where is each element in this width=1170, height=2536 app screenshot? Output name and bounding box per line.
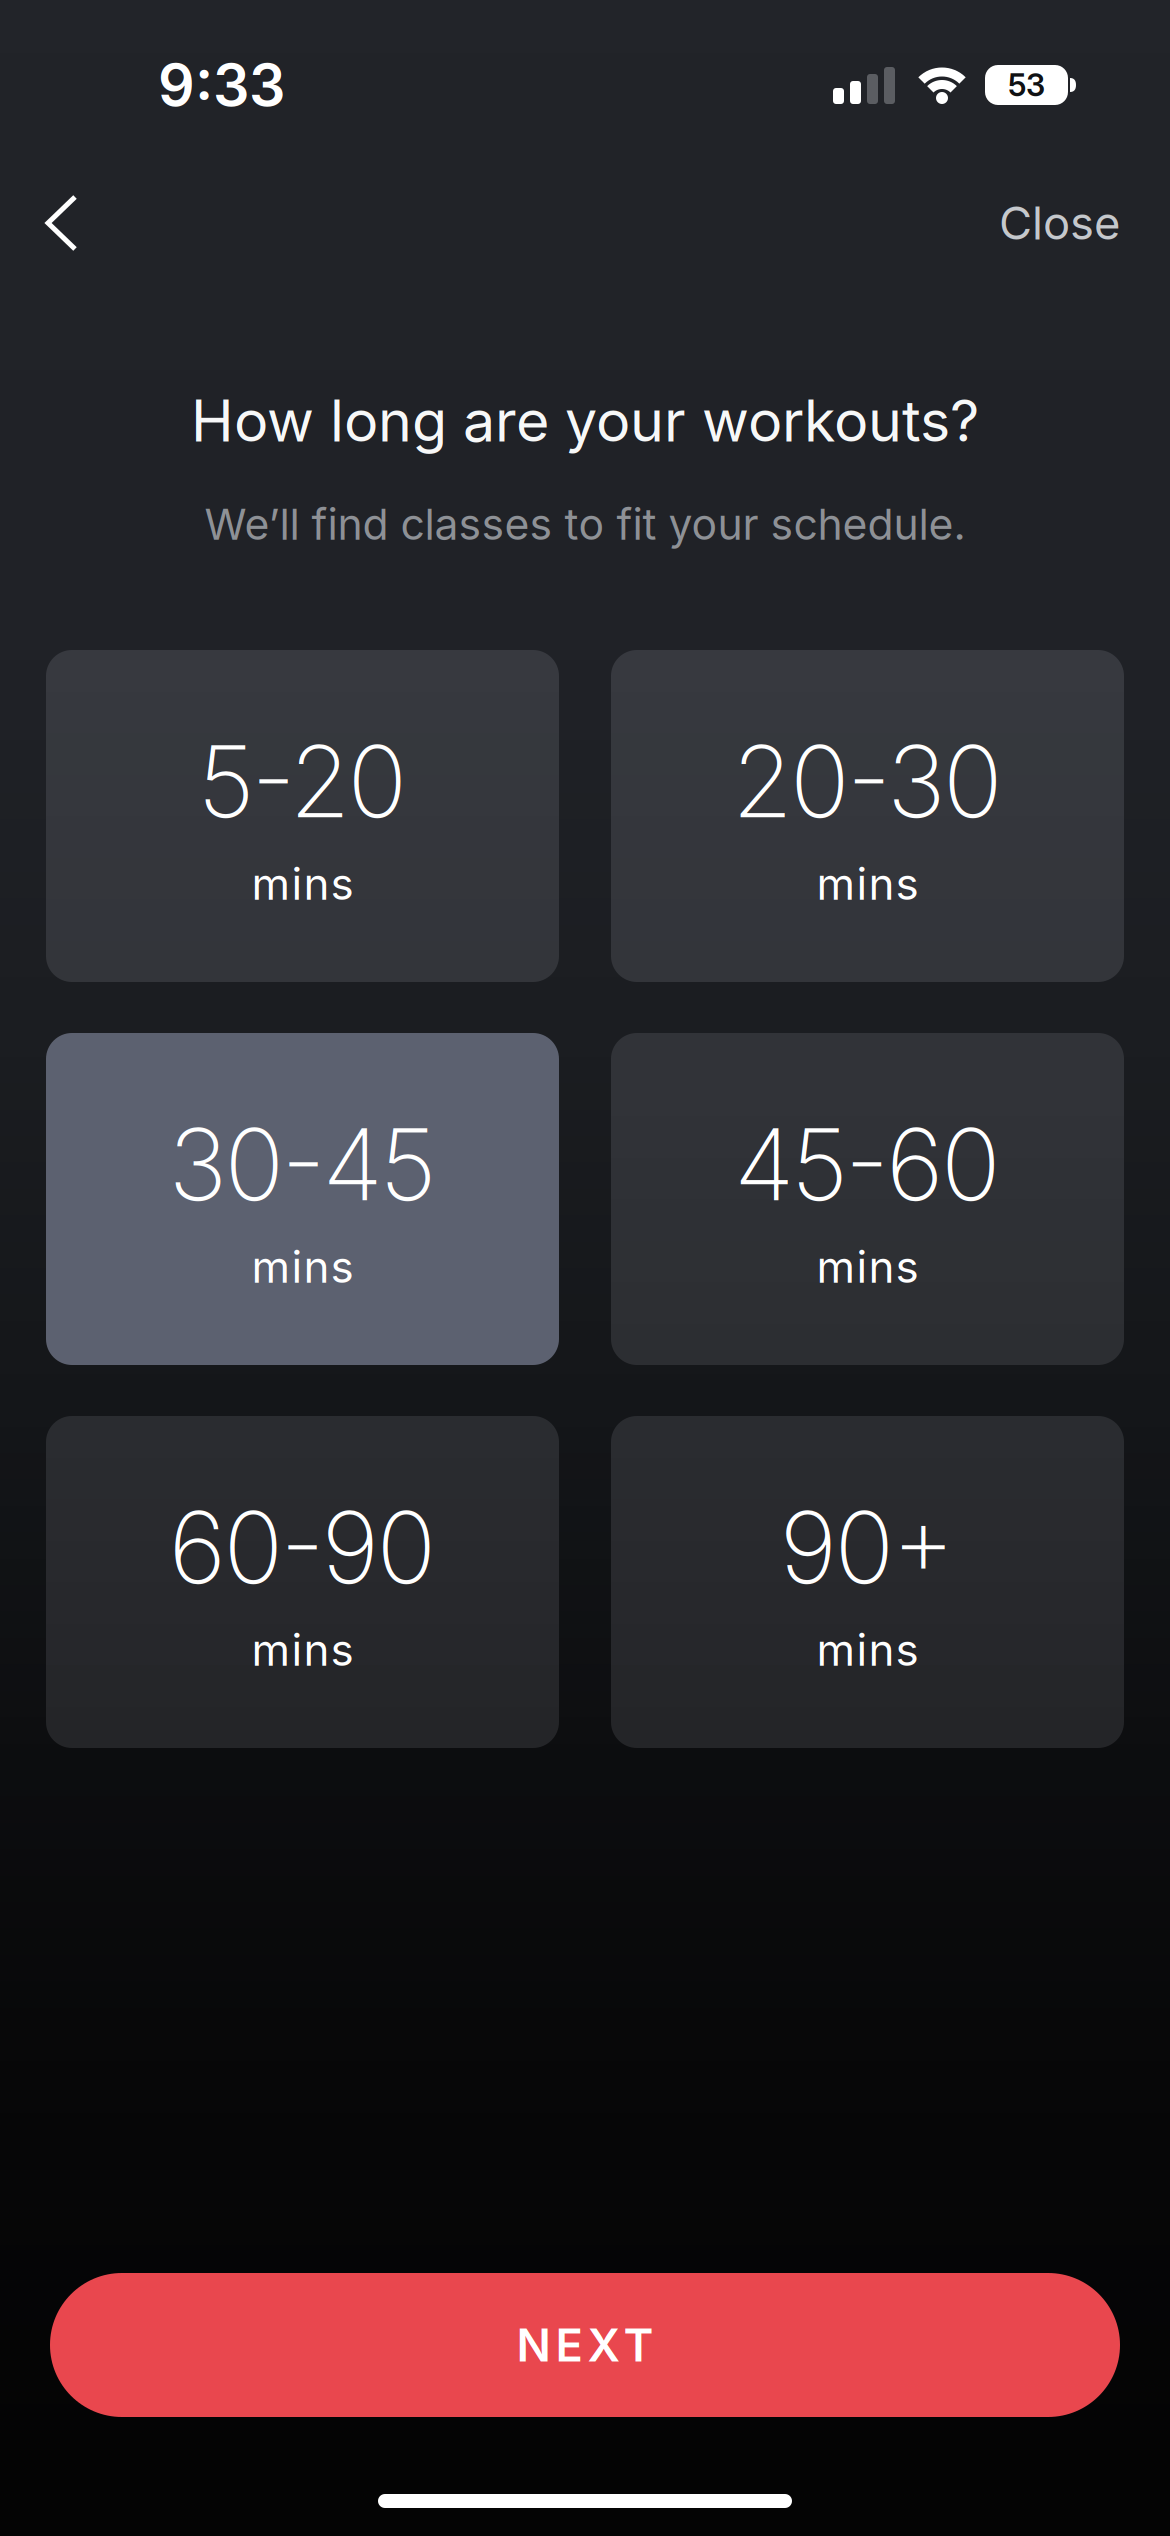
- staticText: 5-20: [197, 722, 407, 841]
- staticText: mins: [251, 1623, 353, 1676]
- button[interactable]: 20-30: [611, 650, 1124, 982]
- button[interactable]: 5-20: [46, 650, 559, 982]
- staticText: 45-60: [734, 1105, 1001, 1224]
- staticText: Close: [999, 196, 1120, 250]
- button[interactable]: Close: [999, 196, 1170, 250]
- button[interactable]: 45-60: [611, 1033, 1124, 1365]
- staticText: mins: [816, 857, 918, 910]
- staticText: 60-90: [168, 1488, 436, 1607]
- staticText: How long are your workouts?: [191, 386, 979, 455]
- button[interactable]: 30-45: [46, 1033, 559, 1365]
- button[interactable]: 90+: [611, 1416, 1124, 1748]
- staticText: mins: [251, 1240, 353, 1293]
- staticText: 9:33: [158, 50, 285, 120]
- staticText: 30-45: [168, 1105, 436, 1224]
- staticText: 90+: [779, 1488, 955, 1607]
- button[interactable]: Back: [0, 192, 80, 254]
- staticText: We’ll find classes to fit your schedule.: [204, 498, 965, 550]
- staticText: 53: [1008, 66, 1045, 103]
- staticText: 20-30: [732, 722, 1003, 841]
- button[interactable]: 60-90: [46, 1416, 559, 1748]
- button[interactable]: NEXT: [50, 2273, 1120, 2417]
- staticText: mins: [816, 1623, 918, 1676]
- staticText: mins: [816, 1240, 918, 1293]
- staticText: mins: [251, 857, 353, 910]
- staticText: NEXT: [516, 2318, 653, 2372]
